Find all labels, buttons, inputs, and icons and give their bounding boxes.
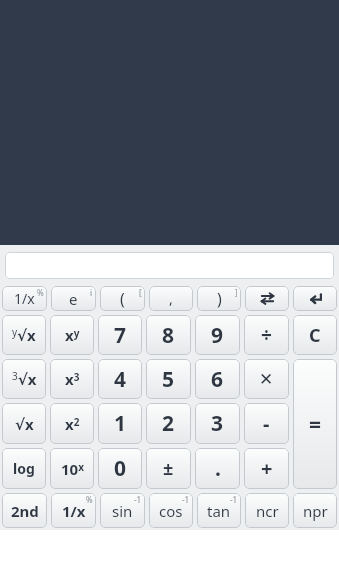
- button[interactable]: 10x: [50, 448, 94, 489]
- button[interactable]: tan: [197, 493, 241, 528]
- staticText: 1: [114, 409, 127, 438]
- staticText: √x: [15, 414, 34, 434]
- button[interactable]: -: [244, 403, 289, 444]
- button[interactable]: npr: [293, 493, 337, 528]
- button[interactable]: ,: [149, 286, 193, 311]
- button[interactable]: 0: [98, 448, 142, 489]
- staticText: -1: [134, 494, 142, 505]
- button[interactable]: 1/x: [2, 286, 47, 311]
- button[interactable]: x2: [50, 403, 94, 444]
- button[interactable]: log: [2, 448, 46, 489]
- button[interactable]: y√x: [2, 315, 46, 355]
- button[interactable]: 8: [146, 315, 191, 355]
- staticText: 1/x: [14, 289, 35, 308]
- button[interactable]: cos: [149, 493, 193, 528]
- staticText: ]: [235, 287, 238, 298]
- button[interactable]: e: [51, 286, 96, 311]
- staticText: 6: [211, 365, 224, 394]
- button[interactable]: x3: [50, 359, 94, 399]
- button[interactable]: .: [195, 448, 240, 489]
- button[interactable]: 9: [195, 315, 240, 355]
- staticText: +: [261, 455, 273, 482]
- button[interactable]: 2: [146, 403, 191, 444]
- button[interactable]: C: [293, 315, 337, 355]
- staticText: log: [13, 459, 35, 478]
- staticText: 10x: [61, 459, 84, 479]
- staticText: (: [120, 288, 125, 310]
- button[interactable]: 2nd: [2, 493, 47, 528]
- staticText: .: [215, 454, 221, 483]
- button[interactable]: 1: [98, 403, 142, 444]
- button[interactable]: ÷: [244, 315, 289, 355]
- button[interactable]: ✕: [244, 359, 289, 399]
- button[interactable]: Swap: [245, 286, 289, 311]
- button[interactable]: sin: [100, 493, 145, 528]
- staticText: i: [90, 287, 93, 298]
- button[interactable]: (: [100, 286, 145, 311]
- button[interactable]: ncr: [245, 493, 289, 528]
- staticText: npr: [303, 501, 328, 521]
- staticText: =: [309, 410, 322, 439]
- staticText: ): [217, 288, 222, 310]
- staticText: ncr: [256, 501, 279, 521]
- staticText: 4: [114, 365, 127, 394]
- staticText: e: [69, 289, 78, 309]
- button[interactable]: 6: [195, 359, 240, 399]
- staticText: %: [86, 494, 93, 505]
- staticText: xy: [65, 325, 80, 345]
- button[interactable]: Enter: [293, 286, 337, 311]
- button[interactable]: ): [197, 286, 241, 311]
- button[interactable]: 5: [146, 359, 191, 399]
- staticText: tan: [207, 501, 231, 521]
- staticText: ÷: [261, 322, 272, 348]
- staticText: sin: [112, 501, 133, 521]
- button[interactable]: [5, 252, 334, 279]
- staticText: 1/x: [62, 501, 86, 521]
- button[interactable]: √x: [2, 403, 46, 444]
- staticText: [: [139, 287, 142, 298]
- button[interactable]: 3: [195, 403, 240, 444]
- button[interactable]: ±: [146, 448, 191, 489]
- staticText: 2: [162, 409, 175, 438]
- staticText: ,: [169, 289, 173, 308]
- staticText: x3: [65, 369, 80, 389]
- staticText: 3√x: [12, 369, 37, 389]
- staticText: 9: [211, 321, 224, 350]
- staticText: -: [263, 410, 270, 437]
- staticText: 7: [114, 321, 127, 350]
- staticText: ±: [163, 456, 174, 481]
- button[interactable]: 3√x: [2, 359, 46, 399]
- staticText: -1: [182, 494, 190, 505]
- staticText: 5: [162, 365, 175, 394]
- staticText: C: [309, 323, 321, 348]
- button[interactable]: 7: [98, 315, 142, 355]
- staticText: cos: [159, 501, 183, 521]
- staticText: -1: [230, 494, 238, 505]
- staticText: 2nd: [11, 501, 39, 521]
- staticText: %: [37, 287, 44, 298]
- button[interactable]: 4: [98, 359, 142, 399]
- staticText: ✕: [259, 369, 274, 389]
- button[interactable]: =: [293, 359, 337, 489]
- staticText: x2: [65, 414, 80, 434]
- staticText: 8: [162, 321, 175, 350]
- staticText: 0: [114, 454, 127, 483]
- button[interactable]: 1/x: [51, 493, 96, 528]
- staticText: 3: [211, 409, 224, 438]
- staticText: y√x: [12, 325, 36, 345]
- button[interactable]: xy: [50, 315, 94, 355]
- button[interactable]: +: [244, 448, 289, 489]
